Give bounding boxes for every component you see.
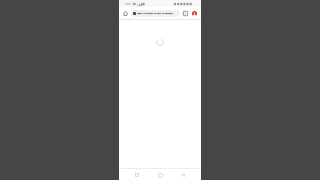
button[interactable]: Back: [178, 170, 188, 180]
button[interactable]: Account: [190, 9, 199, 18]
button[interactable]: Recents: [132, 170, 142, 180]
button[interactable]: Tabs: [181, 9, 190, 18]
button[interactable]: Home: [155, 170, 165, 180]
button[interactable]: Home: [121, 9, 130, 18]
button[interactable]: [131, 10, 180, 17]
